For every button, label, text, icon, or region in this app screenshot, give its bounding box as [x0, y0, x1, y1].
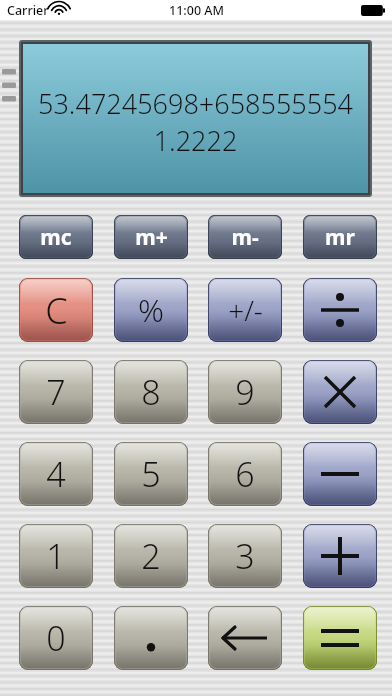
staticText: m-	[231, 223, 259, 252]
button[interactable]: mr	[303, 215, 377, 259]
button[interactable]: 1	[19, 524, 93, 588]
staticText: m+	[135, 223, 168, 252]
button[interactable]: 8	[114, 360, 188, 424]
button[interactable]: +/-	[208, 278, 282, 342]
button[interactable]: Backspace	[208, 606, 282, 670]
button[interactable]: Add	[303, 524, 377, 588]
button[interactable]: 9	[208, 360, 282, 424]
button[interactable]: 2	[114, 524, 188, 588]
staticText: 11:00 AM	[169, 2, 224, 19]
staticText: 1	[46, 533, 66, 579]
staticText: 5	[141, 451, 161, 497]
button[interactable]: 5	[114, 442, 188, 506]
button[interactable]: 3	[208, 524, 282, 588]
staticText: %	[138, 288, 164, 332]
button[interactable]: Subtract	[303, 442, 377, 506]
button[interactable]: Divide	[303, 278, 377, 342]
staticText: 2	[141, 533, 161, 579]
button[interactable]: 6	[208, 442, 282, 506]
button[interactable]: Decimal point	[114, 606, 188, 670]
staticText: 8	[141, 369, 161, 415]
button[interactable]: 0	[19, 606, 93, 670]
button[interactable]: 4	[19, 442, 93, 506]
button[interactable]: 7	[19, 360, 93, 424]
staticText: mc	[40, 223, 72, 252]
button[interactable]: %	[114, 278, 188, 342]
staticText: 9	[235, 369, 255, 415]
staticText: 0	[46, 615, 66, 661]
staticText: C	[45, 286, 68, 335]
button[interactable]: m+	[114, 215, 188, 259]
button[interactable]: Multiply	[303, 360, 377, 424]
staticText: mr	[325, 223, 355, 252]
button[interactable]: mc	[19, 215, 93, 259]
button[interactable]: C	[19, 278, 93, 342]
staticText: 53.47245698+6585555541.2222	[31, 85, 360, 159]
button[interactable]: Equals	[303, 606, 377, 670]
staticText: 4	[46, 451, 66, 497]
staticText: 7	[46, 369, 66, 415]
staticText: Carrier	[7, 2, 49, 19]
button[interactable]: m-	[208, 215, 282, 259]
staticText: 6	[235, 451, 255, 497]
button[interactable]: 53.47245698+6585555541.2222	[23, 44, 368, 193]
staticText: 3	[235, 533, 255, 579]
staticText: +/-	[228, 291, 263, 329]
